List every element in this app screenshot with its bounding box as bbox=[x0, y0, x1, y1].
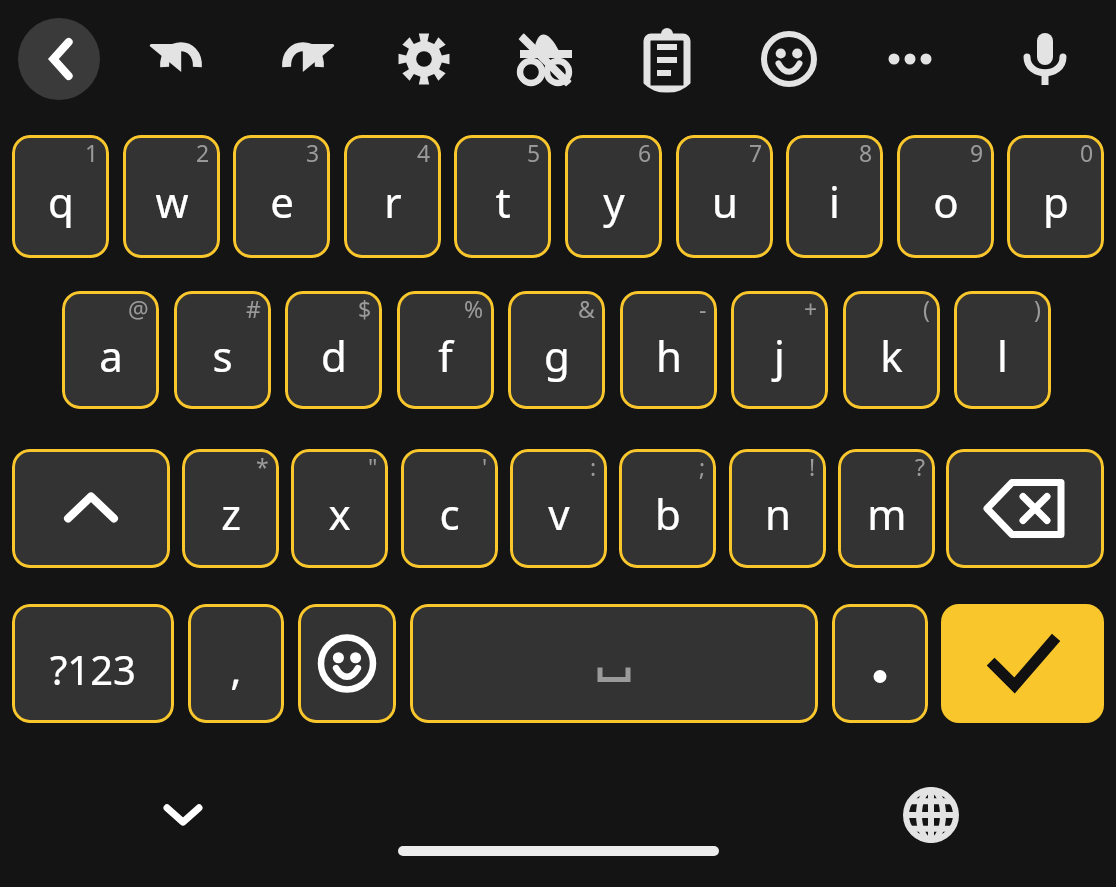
staticText: $ bbox=[358, 293, 372, 324]
staticText: w bbox=[155, 173, 189, 230]
staticText: * bbox=[256, 451, 269, 482]
button[interactable]: w bbox=[123, 135, 220, 258]
button[interactable]: Incognito off bbox=[512, 25, 580, 93]
button[interactable]: u bbox=[676, 135, 773, 258]
button[interactable]: Back bbox=[18, 18, 100, 100]
button[interactable]: Backspace bbox=[946, 449, 1104, 568]
staticText: t bbox=[495, 173, 511, 230]
button[interactable]: Comma bbox=[188, 604, 284, 723]
button[interactable]: n bbox=[729, 449, 826, 568]
staticText: e bbox=[270, 173, 294, 230]
button[interactable]: i bbox=[786, 135, 883, 258]
button[interactable]: Space bbox=[410, 604, 818, 723]
staticText: & bbox=[578, 293, 595, 324]
button[interactable]: z bbox=[182, 449, 279, 568]
staticText: 0 bbox=[1080, 137, 1094, 168]
button[interactable]: Clipboard bbox=[633, 25, 701, 93]
button[interactable]: l bbox=[954, 291, 1051, 409]
staticText: h bbox=[656, 327, 682, 384]
button[interactable]: More options bbox=[876, 25, 944, 93]
button[interactable]: e bbox=[233, 135, 330, 258]
button[interactable]: Redo bbox=[269, 25, 337, 93]
staticText: g bbox=[544, 327, 570, 384]
staticText: ?123 bbox=[50, 642, 136, 696]
staticText: ; bbox=[699, 451, 706, 482]
button[interactable]: Emoji bbox=[298, 604, 396, 723]
staticText: r bbox=[384, 173, 402, 230]
button[interactable]: Enter bbox=[941, 604, 1104, 723]
staticText: ! bbox=[809, 451, 816, 482]
staticText: y bbox=[603, 173, 625, 230]
button[interactable]: Hide keyboard bbox=[149, 781, 217, 849]
staticText: @ bbox=[128, 293, 149, 324]
button[interactable]: x bbox=[291, 449, 388, 568]
button[interactable]: Change language bbox=[897, 781, 965, 849]
staticText: q bbox=[48, 173, 74, 230]
staticText: 9 bbox=[970, 137, 984, 168]
staticText: ' bbox=[482, 451, 488, 482]
staticText: k bbox=[880, 327, 903, 384]
button[interactable]: q bbox=[12, 135, 109, 258]
staticText: " bbox=[368, 451, 378, 482]
button[interactable]: t bbox=[454, 135, 551, 258]
button[interactable]: Shift bbox=[12, 449, 170, 568]
button[interactable]: k bbox=[843, 291, 940, 409]
staticText: f bbox=[438, 327, 453, 384]
staticText: m bbox=[867, 485, 907, 542]
button[interactable]: Symbols bbox=[12, 604, 174, 723]
staticText: a bbox=[99, 327, 123, 384]
staticText: i bbox=[829, 173, 840, 230]
staticText: 2 bbox=[196, 137, 210, 168]
button[interactable]: b bbox=[619, 449, 716, 568]
staticText: # bbox=[246, 293, 261, 324]
staticText: c bbox=[439, 485, 460, 542]
button[interactable]: p bbox=[1007, 135, 1104, 258]
button[interactable]: c bbox=[401, 449, 498, 568]
staticText: 8 bbox=[859, 137, 873, 168]
staticText: % bbox=[464, 293, 484, 324]
staticText: ? bbox=[915, 451, 925, 482]
staticText: 5 bbox=[527, 137, 541, 168]
staticText: b bbox=[655, 485, 681, 542]
button[interactable]: Undo bbox=[147, 25, 215, 93]
staticText: 7 bbox=[749, 137, 763, 168]
button[interactable]: o bbox=[897, 135, 994, 258]
button[interactable]: r bbox=[344, 135, 441, 258]
staticText: d bbox=[321, 327, 347, 384]
staticText: + bbox=[804, 293, 818, 324]
staticText: v bbox=[548, 485, 570, 542]
staticText: o bbox=[933, 173, 959, 230]
button[interactable]: Emoji bbox=[755, 25, 823, 93]
staticText: , bbox=[230, 640, 242, 697]
staticText: l bbox=[997, 327, 1008, 384]
staticText: s bbox=[212, 327, 233, 384]
staticText: 4 bbox=[417, 137, 431, 168]
button[interactable]: y bbox=[565, 135, 662, 258]
staticText: z bbox=[221, 485, 241, 542]
button[interactable]: f bbox=[397, 291, 494, 409]
button[interactable]: v bbox=[510, 449, 607, 568]
staticText: 6 bbox=[638, 137, 652, 168]
staticText: - bbox=[699, 293, 707, 324]
staticText: p bbox=[1043, 173, 1069, 230]
staticText: ) bbox=[1034, 293, 1041, 324]
button[interactable]: Voice input bbox=[1011, 25, 1079, 93]
staticText: u bbox=[712, 173, 738, 230]
button[interactable]: a bbox=[62, 291, 159, 409]
staticText: 3 bbox=[306, 137, 320, 168]
button[interactable]: Period bbox=[832, 604, 928, 723]
staticText: 1 bbox=[85, 137, 99, 168]
button[interactable]: d bbox=[285, 291, 382, 409]
staticText: j bbox=[774, 327, 785, 384]
button[interactable]: s bbox=[174, 291, 271, 409]
staticText: : bbox=[590, 451, 597, 482]
staticText: ( bbox=[923, 293, 930, 324]
button[interactable]: h bbox=[620, 291, 717, 409]
button[interactable]: m bbox=[838, 449, 935, 568]
button[interactable]: Settings bbox=[390, 25, 458, 93]
button[interactable]: j bbox=[731, 291, 828, 409]
staticText: n bbox=[765, 485, 791, 542]
button[interactable]: g bbox=[508, 291, 605, 409]
staticText: x bbox=[328, 485, 351, 542]
